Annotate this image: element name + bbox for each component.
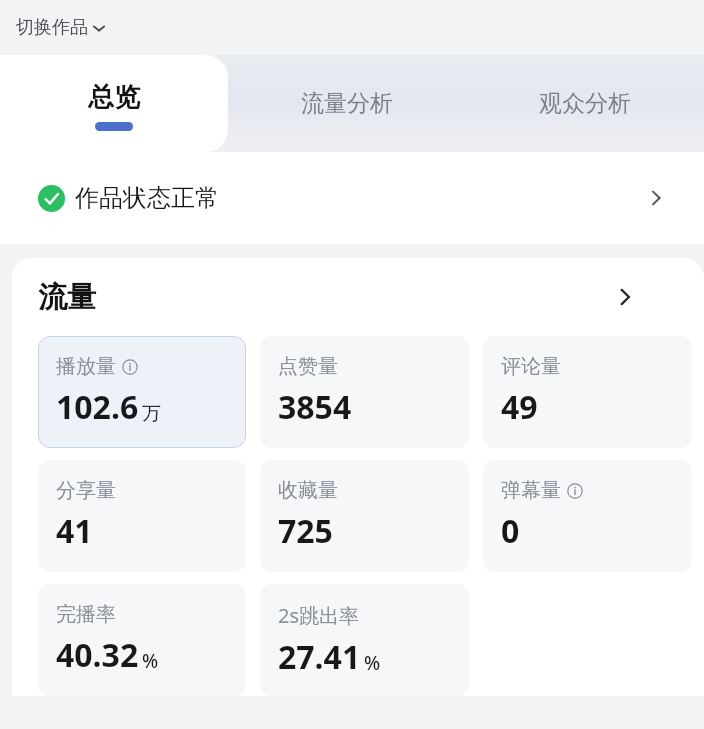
button[interactable]: 完播率 [38, 584, 246, 696]
button[interactable]: 弹幕量 [483, 460, 692, 572]
button[interactable]: 播放量 [38, 336, 246, 448]
staticText: 2s跳出率 [278, 602, 360, 629]
staticText: 总览 [88, 81, 140, 114]
staticText: 播放量 [56, 354, 116, 379]
other: 查看流量详情 [614, 286, 636, 308]
button[interactable]: 评论量 [483, 336, 692, 448]
staticText: 弹幕量 [501, 478, 561, 503]
button[interactable]: 点赞量 [260, 336, 469, 448]
staticText: 流量分析 [301, 89, 393, 118]
staticText: 观众分析 [539, 89, 631, 118]
staticText: 点赞量 [278, 354, 338, 379]
staticText: 切换作品 [16, 16, 88, 39]
button[interactable]: 流量分析 [228, 55, 466, 152]
staticText: 万 [142, 402, 161, 426]
button[interactable]: 切换作品 [16, 0, 107, 55]
staticText: 0 [501, 509, 520, 553]
staticText: 完播率 [56, 602, 116, 627]
staticText: 49 [501, 385, 538, 429]
button[interactable]: 观众分析 [466, 55, 704, 152]
staticText: 收藏量 [278, 478, 338, 503]
staticText: 102.6 [56, 385, 139, 429]
button[interactable]: 总览 [0, 55, 228, 152]
staticText: 作品状态正常 [75, 183, 219, 213]
staticText: 725 [278, 509, 333, 553]
staticText: % [142, 648, 159, 674]
staticText: 41 [56, 509, 93, 553]
button[interactable]: 收藏量 [260, 460, 469, 572]
button[interactable]: 流量 [12, 258, 704, 336]
button[interactable]: 分享量 [38, 460, 246, 572]
staticText: 评论量 [501, 354, 561, 379]
staticText: 3854 [278, 385, 352, 429]
staticText: 27.41 [278, 635, 361, 679]
button[interactable]: 2s跳出率 [260, 584, 469, 696]
staticText: % [364, 650, 381, 676]
staticText: 流量 [38, 279, 96, 316]
staticText: 分享量 [56, 478, 116, 503]
button[interactable]: 作品状态正常 [0, 152, 704, 244]
staticText: 40.32 [56, 633, 139, 677]
